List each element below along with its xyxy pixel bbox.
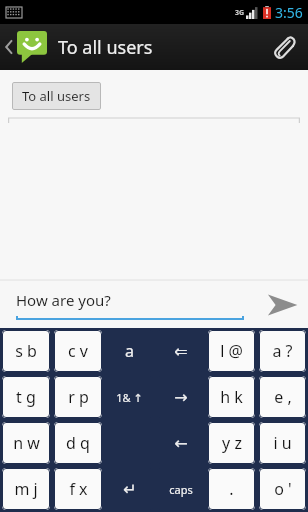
button[interactable]: m j	[2, 468, 50, 510]
button[interactable]: c v	[54, 330, 102, 372]
button[interactable]: l @	[208, 330, 255, 372]
staticText: ←	[174, 434, 188, 453]
staticText: To all users	[22, 87, 91, 105]
staticText: a	[125, 340, 134, 362]
staticText: y z	[222, 432, 242, 454]
button[interactable]: h k	[208, 376, 255, 418]
button[interactable]: .	[208, 468, 255, 510]
button[interactable]: a	[106, 330, 153, 372]
button[interactable]: f x	[54, 468, 102, 510]
button[interactable]: ⇐	[157, 330, 204, 372]
button[interactable]: ↵	[106, 468, 153, 510]
button[interactable]: s b	[2, 330, 50, 372]
staticText: 3:56	[275, 3, 303, 22]
button[interactable]: a ?	[259, 330, 306, 372]
staticText: f x	[69, 478, 88, 500]
button[interactable]: e ,	[259, 376, 306, 418]
button[interactable]: r p	[54, 376, 102, 418]
button[interactable]: d q	[54, 422, 102, 464]
button[interactable]: n w	[2, 422, 50, 464]
staticText: m j	[14, 478, 38, 500]
button[interactable]: To all users	[12, 82, 101, 110]
staticText: c v	[68, 340, 88, 362]
staticText: How are you?	[16, 290, 111, 310]
button[interactable]: →	[157, 376, 204, 418]
staticText: o '	[274, 478, 292, 500]
staticText: 1& ↑	[116, 390, 143, 405]
staticText: →	[174, 388, 188, 407]
staticText: l @	[220, 340, 243, 362]
button[interactable]: 1& ↑	[106, 376, 153, 418]
button[interactable]: ←	[157, 422, 204, 464]
staticText: n w	[13, 432, 40, 454]
button[interactable]: Navigate up	[0, 24, 49, 70]
button[interactable]: i u	[259, 422, 306, 464]
staticText: r p	[68, 386, 89, 408]
staticText: s b	[15, 340, 37, 362]
staticText: caps	[169, 482, 193, 497]
staticText: ⇐	[174, 342, 188, 361]
staticText: h k	[220, 386, 243, 408]
staticText: i u	[273, 432, 292, 454]
staticText: d q	[66, 432, 90, 454]
button[interactable]: o '	[259, 468, 306, 510]
staticText: t g	[16, 386, 36, 408]
staticText: e ,	[274, 386, 292, 408]
button[interactable]: Attach	[256, 24, 308, 70]
button[interactable]: t g	[2, 376, 50, 418]
staticText: 3G	[235, 8, 245, 18]
staticText: To all users	[58, 35, 153, 60]
button[interactable]: Send	[256, 281, 308, 328]
staticText: .	[229, 478, 234, 500]
staticText: a ?	[272, 340, 293, 362]
staticText: ↵	[123, 480, 137, 499]
button[interactable]: How are you?	[16, 290, 244, 320]
button[interactable]: y z	[208, 422, 255, 464]
button[interactable]: caps	[157, 468, 204, 510]
